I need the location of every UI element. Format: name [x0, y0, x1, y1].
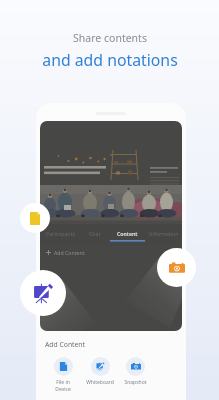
- button[interactable]: Content: [110, 229, 145, 238]
- staticText: Add Content: [45, 340, 86, 349]
- staticText: Add Content: [54, 249, 85, 256]
- staticText: Content: [117, 230, 138, 237]
- staticText: Participants: [46, 230, 75, 237]
- button[interactable]: Document: [20, 203, 50, 233]
- staticText: Information: [149, 230, 179, 237]
- staticText: and add notations: [42, 49, 178, 71]
- button[interactable]: File in Device: [47, 357, 79, 392]
- staticText: Whiteboard: [86, 379, 114, 386]
- button[interactable]: Add Content: [46, 249, 85, 256]
- button[interactable]: Snapshot: [119, 357, 151, 386]
- button[interactable]: Camera: [157, 248, 196, 287]
- staticText: Chat: [89, 230, 101, 237]
- staticText: Share contents: [73, 31, 147, 45]
- button[interactable]: Whiteboard: [84, 357, 116, 386]
- staticText: Snapshot: [124, 379, 147, 386]
- button[interactable]: Participants: [40, 229, 80, 238]
- button[interactable]: Whiteboard: [20, 270, 66, 316]
- button[interactable]: Chat: [80, 229, 110, 238]
- staticText: File in Device: [55, 379, 71, 392]
- button[interactable]: Information: [145, 229, 182, 238]
